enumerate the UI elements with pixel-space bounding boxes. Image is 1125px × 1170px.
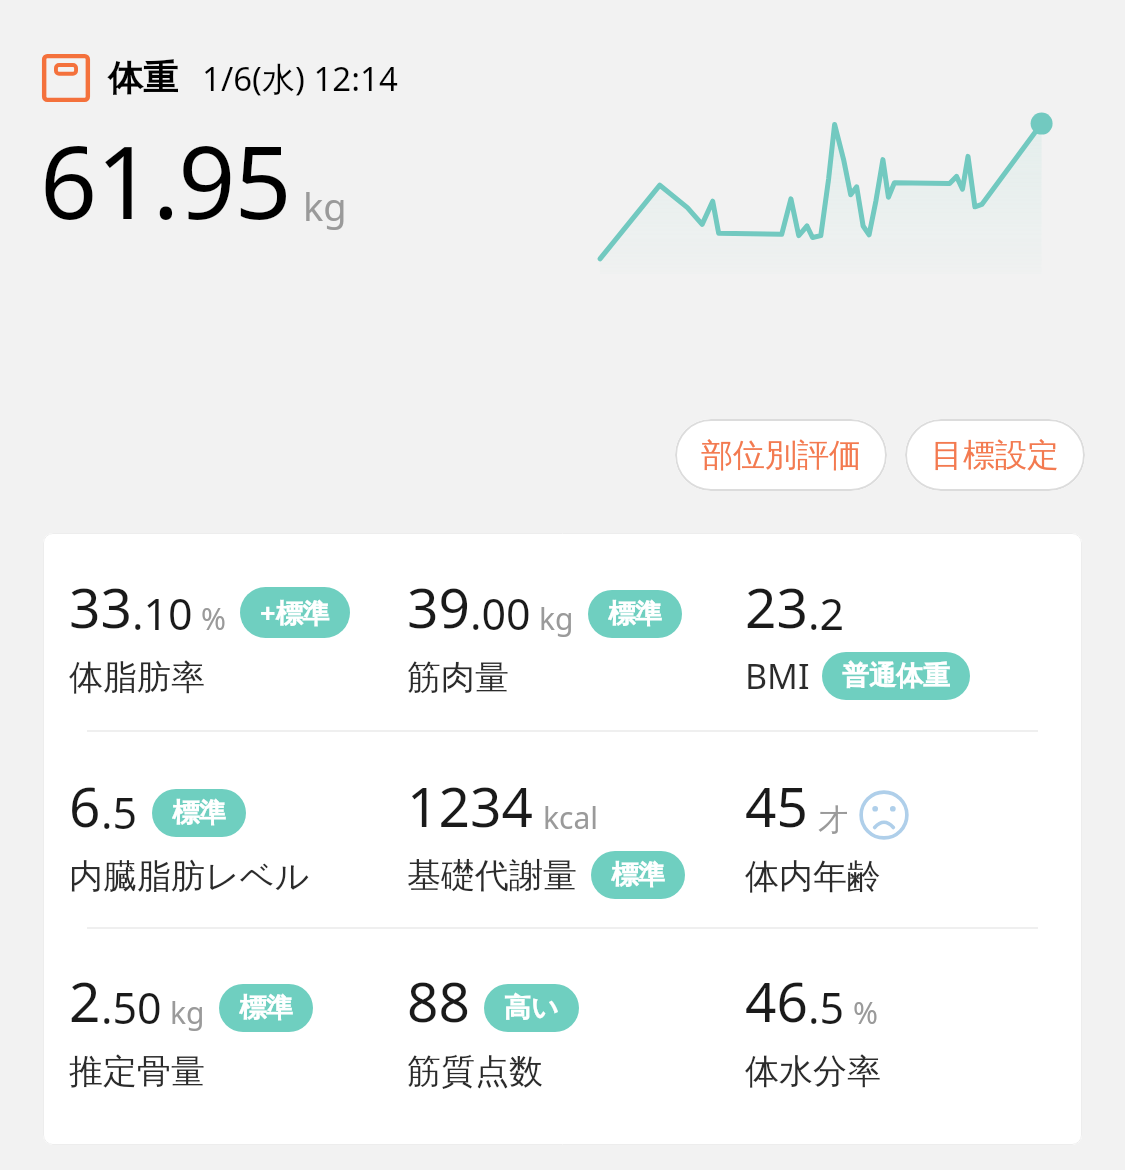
staticText: 筋肉量 <box>407 656 509 699</box>
staticText: .5 <box>808 978 845 1037</box>
staticText: 体脂肪率 <box>69 656 205 699</box>
button[interactable]: 45 <box>745 768 910 898</box>
button[interactable]: 2 <box>69 963 313 1093</box>
staticText: 体内年齢 <box>745 855 881 898</box>
staticText: 46 <box>745 963 808 1038</box>
button[interactable]: 6 <box>69 768 310 898</box>
staticText: .50 <box>101 978 162 1037</box>
staticText: 高い <box>504 991 559 1025</box>
staticText: 標準 <box>239 991 293 1025</box>
staticText: 体重 <box>108 56 178 100</box>
staticText: 1234 <box>407 768 533 843</box>
button[interactable]: 23 <box>745 569 970 700</box>
staticText: kg <box>303 180 347 232</box>
staticText: 推定骨量 <box>69 1050 205 1093</box>
staticText: 体水分率 <box>745 1050 881 1093</box>
staticText: .2 <box>808 584 845 643</box>
staticText: 39 <box>407 569 470 644</box>
button[interactable]: 1234 <box>407 768 685 899</box>
staticText: 6 <box>69 768 101 843</box>
button[interactable]: 部位別評価 <box>675 419 887 491</box>
staticText: 45 <box>745 768 808 843</box>
other: Weight scale <box>40 52 92 104</box>
staticText: 2 <box>69 963 101 1038</box>
staticText: kg <box>170 992 205 1033</box>
staticText: .00 <box>470 584 531 643</box>
staticText: 基礎代謝量 <box>407 854 577 897</box>
staticText: % <box>201 598 226 639</box>
button[interactable]: 33 <box>69 569 350 699</box>
button[interactable]: 目標設定 <box>905 419 1085 491</box>
staticText: kcal <box>543 797 598 838</box>
staticText: 才 <box>818 801 848 839</box>
staticText: 標準 <box>172 796 226 830</box>
button[interactable]: Weight scale <box>40 52 398 104</box>
staticText: 普通体重 <box>842 659 950 693</box>
button[interactable]: 88 <box>407 963 579 1093</box>
staticText: +標準 <box>260 594 330 631</box>
staticText: 標準 <box>611 858 665 892</box>
staticText: 1/6(水) 12:14 <box>202 56 398 101</box>
staticText: 33 <box>69 569 132 644</box>
staticText: kg <box>539 598 574 639</box>
staticText: 61.95 <box>40 112 291 248</box>
staticText: .5 <box>101 783 138 842</box>
staticText: 筋質点数 <box>407 1050 543 1093</box>
other: Body age status <box>858 789 910 841</box>
staticText: 88 <box>407 963 470 1038</box>
staticText: BMI <box>745 653 810 699</box>
staticText: 部位別評価 <box>701 435 861 475</box>
staticText: 23 <box>745 569 808 644</box>
staticText: 内臓脂肪レベル <box>69 855 310 898</box>
staticText: 標準 <box>608 597 662 631</box>
staticText: 目標設定 <box>931 435 1059 475</box>
staticText: % <box>853 992 878 1033</box>
staticText: .10 <box>132 584 193 643</box>
button[interactable]: 46 <box>745 963 881 1093</box>
button[interactable]: 39 <box>407 569 682 699</box>
